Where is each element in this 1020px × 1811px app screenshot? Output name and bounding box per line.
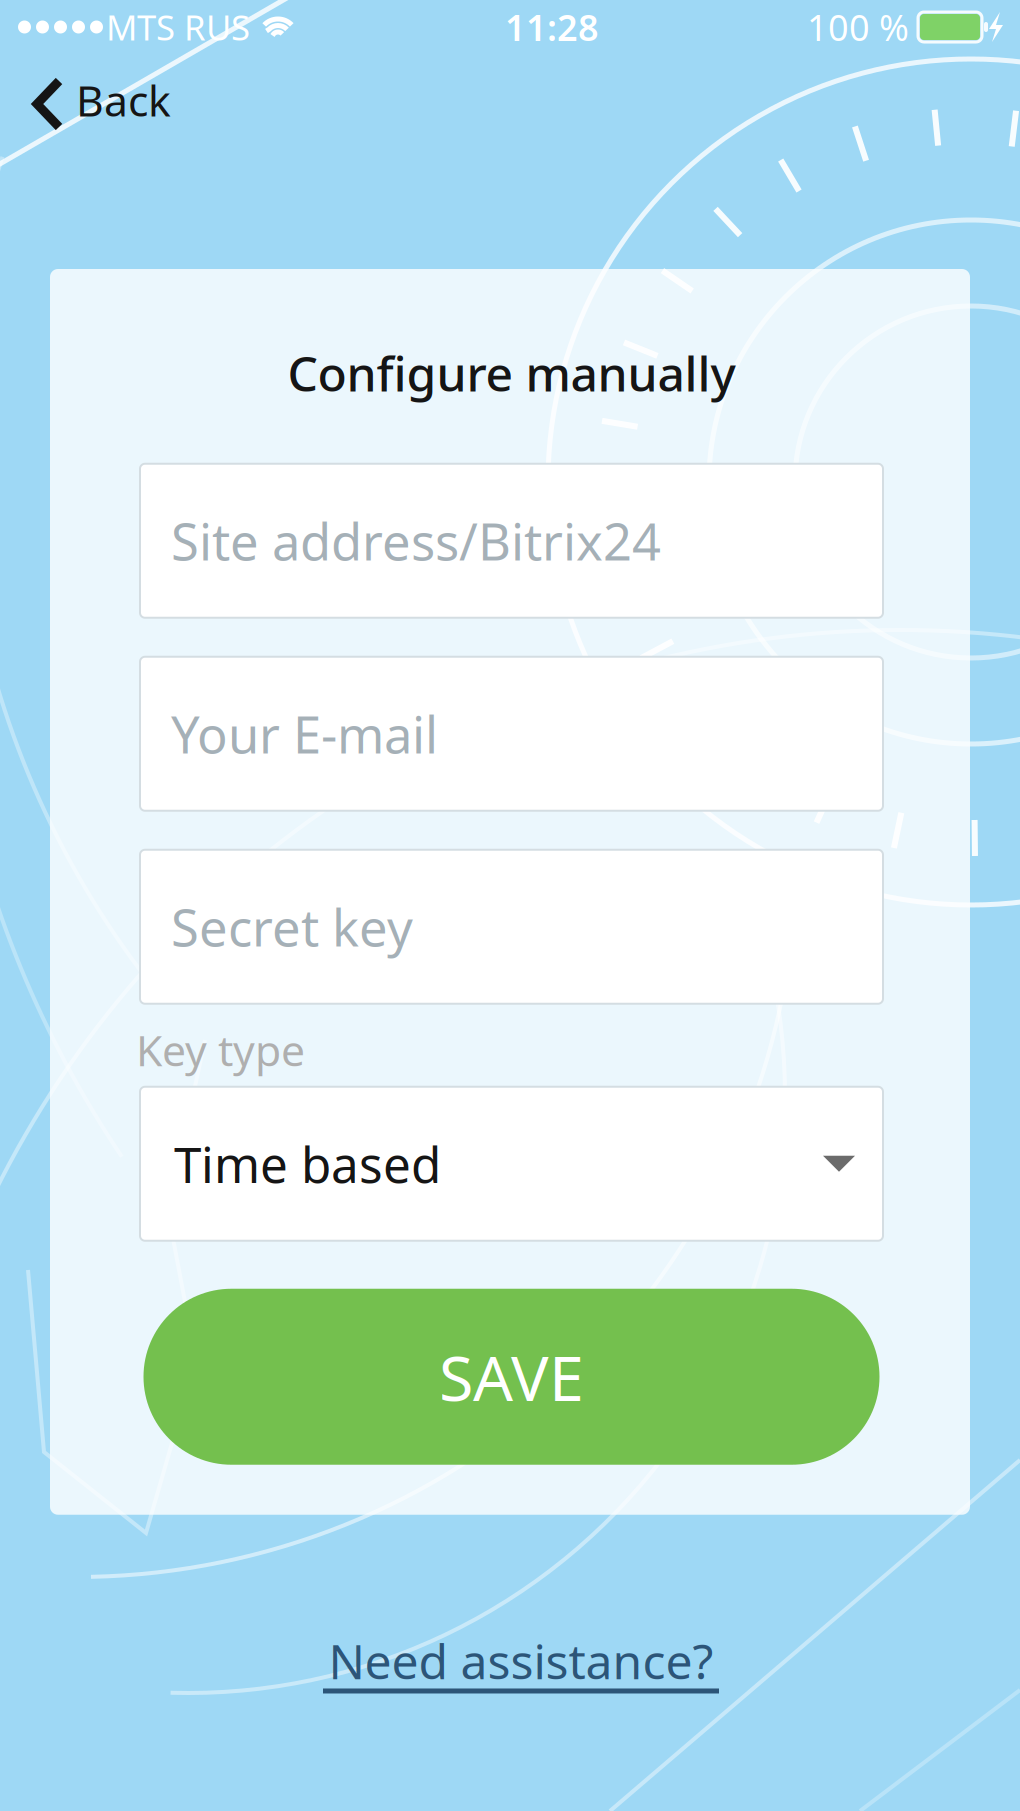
staticText: Back [76, 72, 171, 128]
staticText: Configure manually [287, 341, 735, 405]
staticText: SAVE [439, 1335, 584, 1418]
staticText: 100 % [807, 3, 918, 51]
button[interactable]: Time based [140, 1087, 883, 1241]
staticText: Key type [136, 1021, 305, 1078]
staticText: 11:28 [505, 3, 599, 51]
staticText: MTS RUS [106, 4, 250, 50]
staticText: Site address/Bitrix24 [171, 507, 661, 574]
button[interactable]: Back [0, 54, 197, 146]
staticText: Secret key [171, 893, 413, 960]
staticText: Your E-mail [171, 700, 438, 767]
button[interactable]: Need assistance? [301, 1629, 719, 1693]
staticText: Time based [174, 1131, 441, 1196]
button[interactable]: SAVE [143, 1289, 879, 1465]
staticText: Need assistance? [328, 1629, 713, 1692]
